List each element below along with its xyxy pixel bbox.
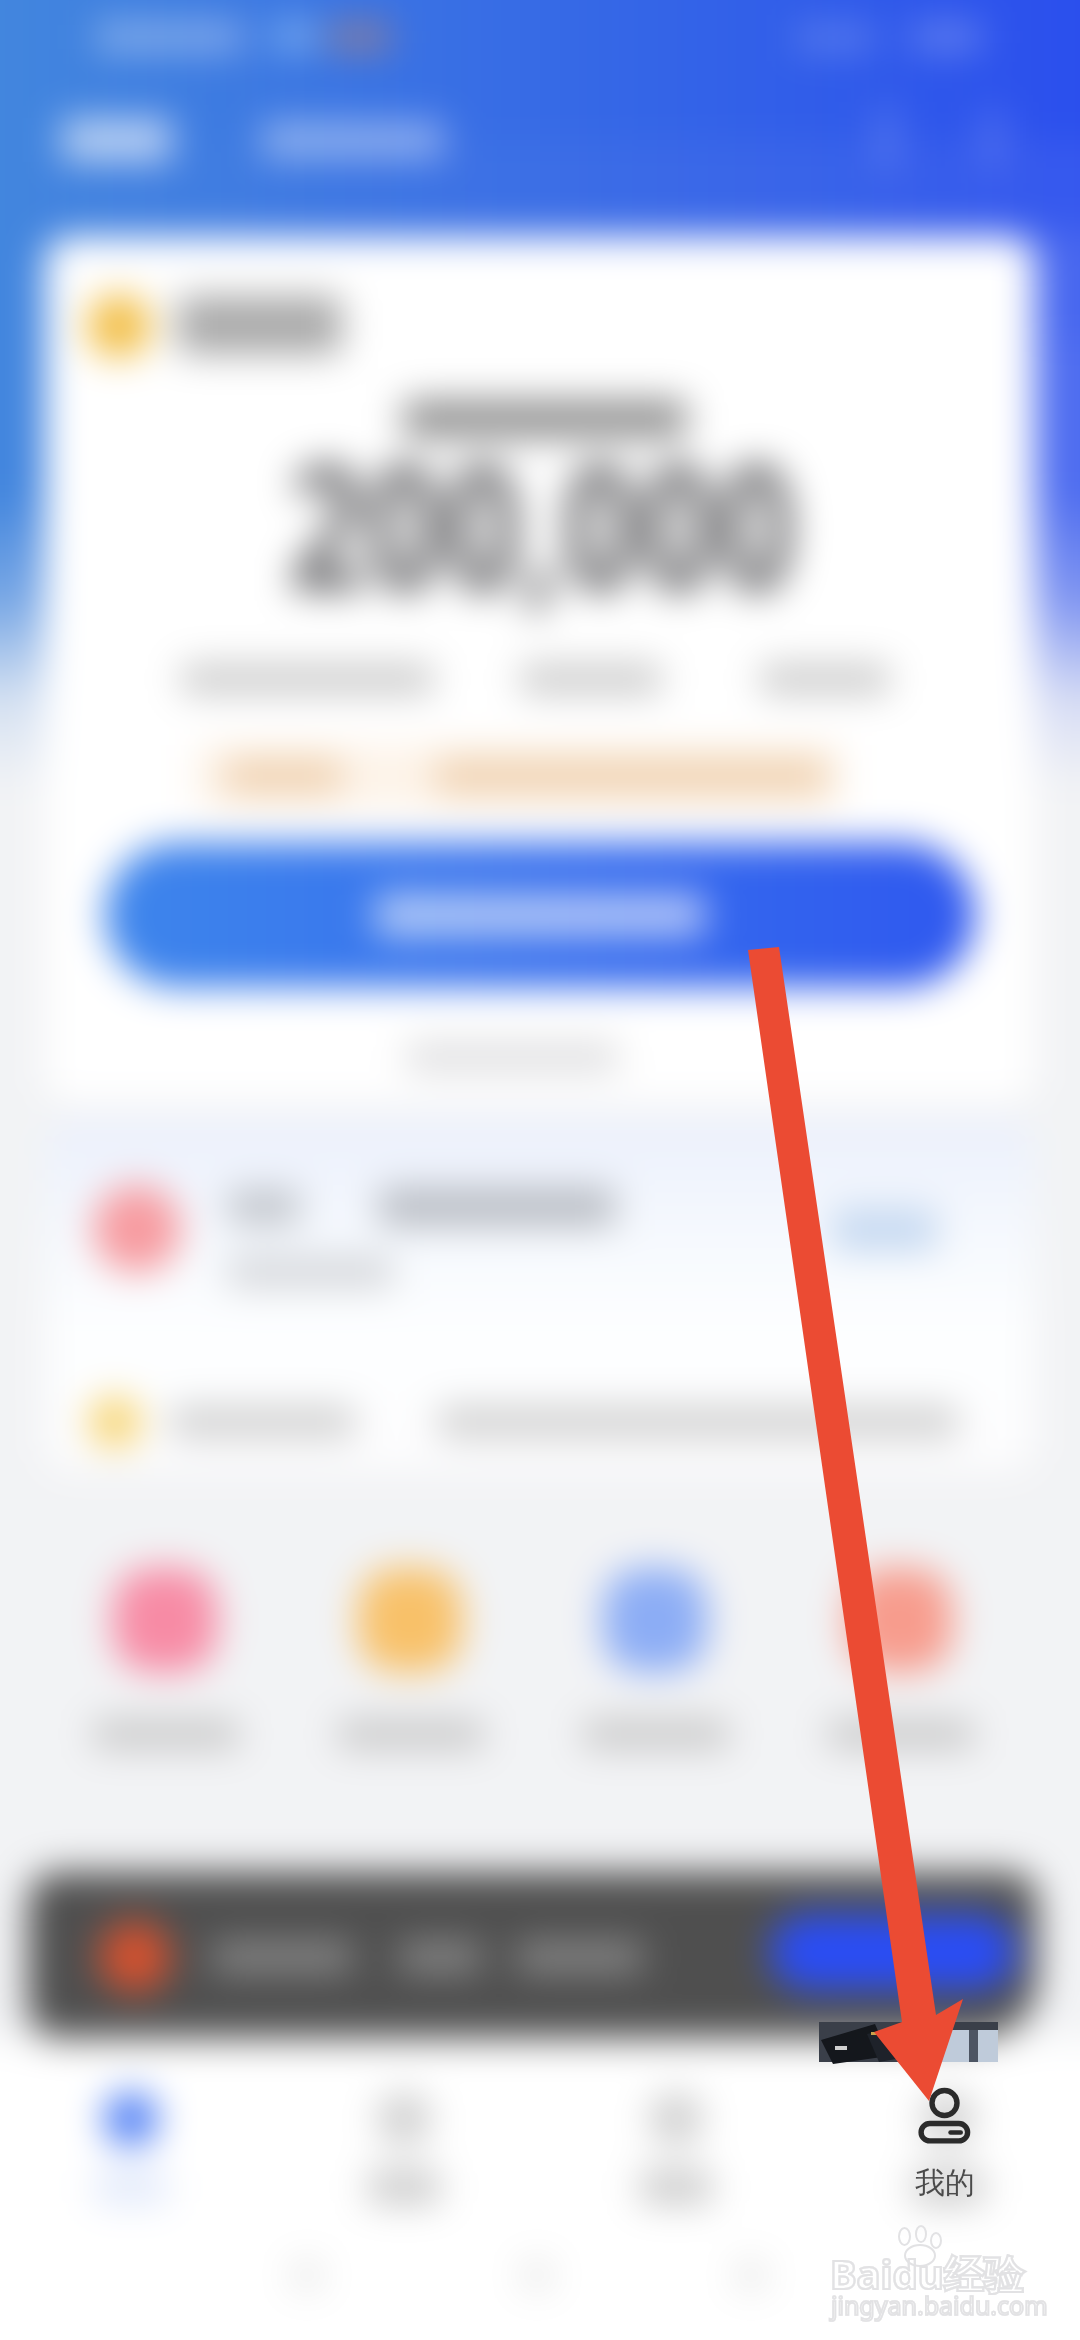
button[interactable] xyxy=(0,2070,266,2270)
button[interactable] xyxy=(832,1208,937,1252)
staticText: jingyan.baidu.com xyxy=(831,2288,1048,2322)
button[interactable] xyxy=(541,2070,811,2270)
staticText: 我的 xyxy=(915,2164,975,2202)
button[interactable] xyxy=(269,2070,539,2270)
button[interactable] xyxy=(770,1914,1016,1990)
button[interactable] xyxy=(813,2070,1080,2270)
button[interactable] xyxy=(65,1548,265,1778)
button[interactable] xyxy=(555,1548,755,1778)
button[interactable] xyxy=(800,1548,1000,1778)
button[interactable] xyxy=(105,843,975,987)
staticText: Baidu经验 xyxy=(830,2246,1024,2301)
button[interactable]: 我的 xyxy=(865,2078,1025,2248)
staticText: 200,000 xyxy=(288,404,797,642)
button[interactable] xyxy=(310,1548,510,1778)
